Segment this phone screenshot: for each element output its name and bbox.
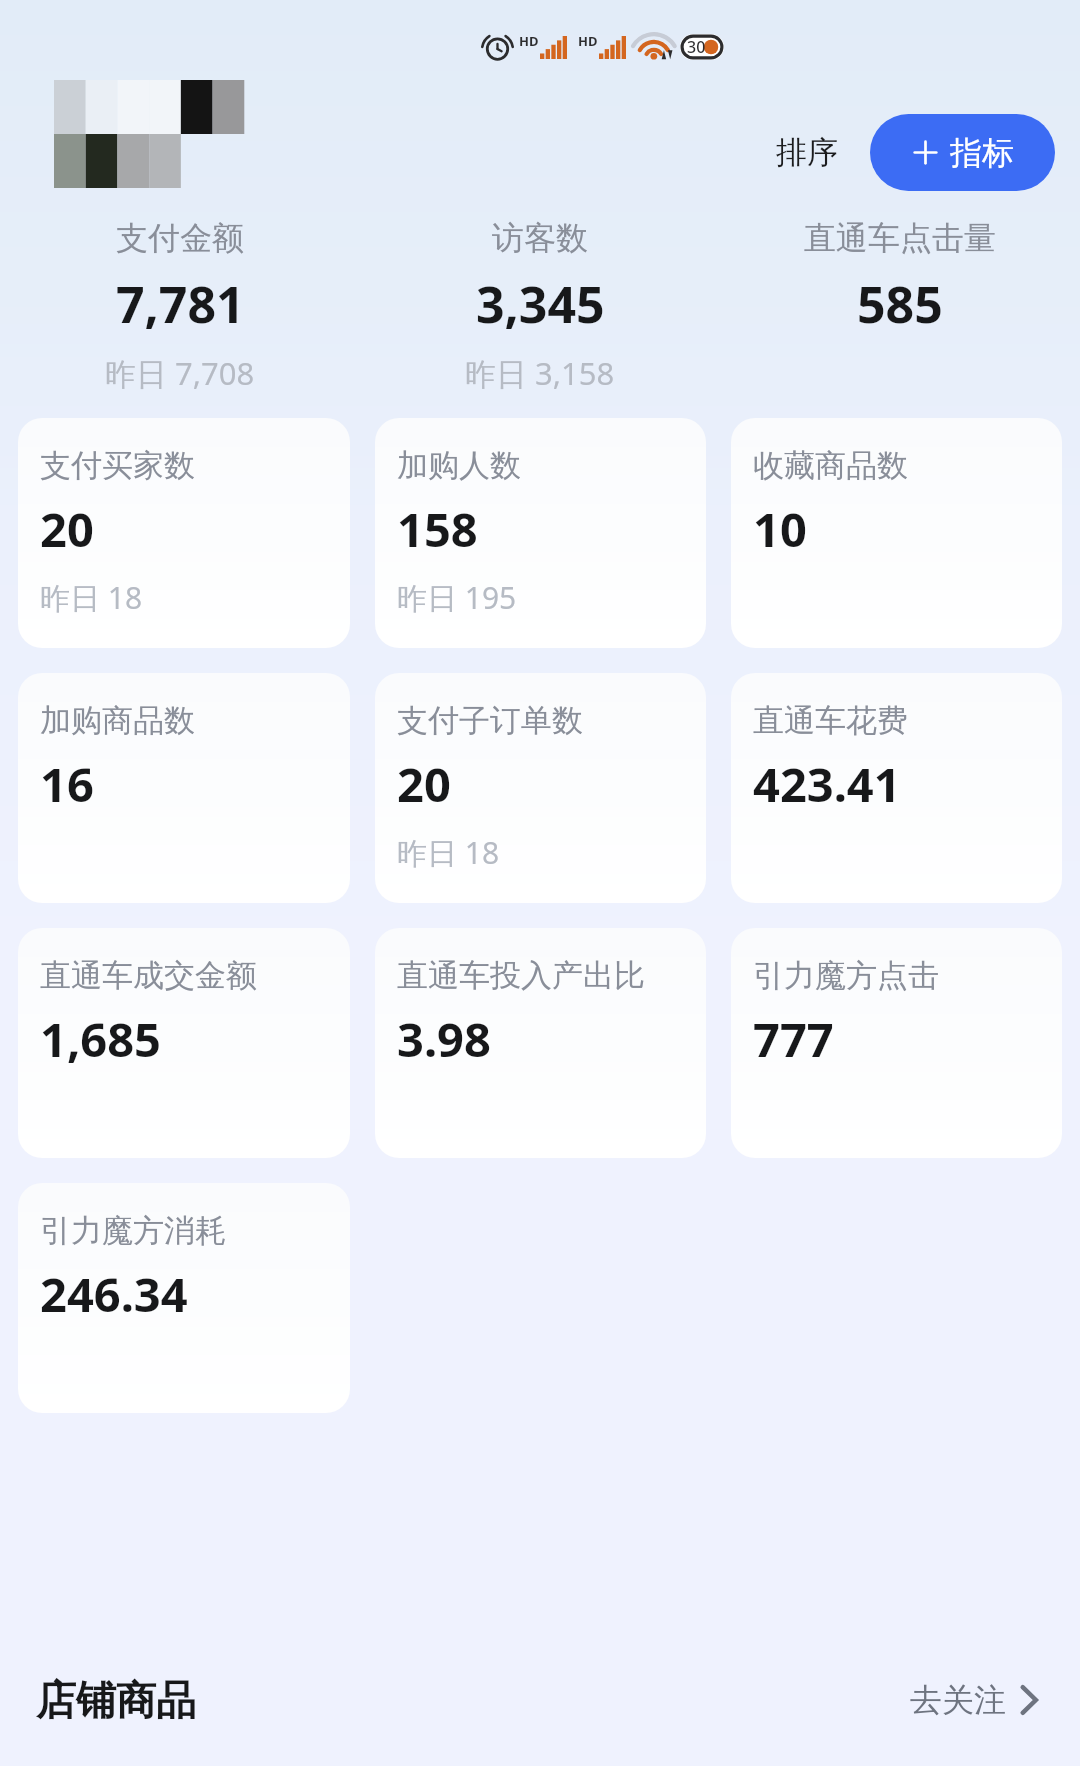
staticText: 去关注 <box>910 1680 1006 1720</box>
staticText: 3,345 <box>476 270 605 338</box>
button[interactable]: 支付子订单数 <box>375 673 706 903</box>
staticText: 店铺商品 <box>36 1675 196 1725</box>
staticText: 直通车点击量 <box>804 218 996 258</box>
staticText: 收藏商品数 <box>753 446 908 485</box>
staticText: 指标 <box>950 133 1014 173</box>
staticText: 昨日 3,158 <box>465 352 615 394</box>
button[interactable]: 收藏商品数 <box>731 418 1062 648</box>
staticText: 777 <box>753 1007 834 1071</box>
button[interactable]: 排序 <box>766 125 848 180</box>
staticText: 20 <box>40 497 94 561</box>
staticText: 1,685 <box>40 1007 161 1071</box>
staticText: 585 <box>857 270 943 338</box>
staticText: 支付金额 <box>116 218 244 258</box>
staticText: 访客数 <box>492 218 588 258</box>
button[interactable]: 直通车成交金额 <box>18 928 350 1158</box>
button[interactable]: 引力魔方消耗 <box>18 1183 350 1413</box>
button[interactable]: 去关注 <box>904 1672 1044 1728</box>
staticText: 16 <box>40 752 94 816</box>
staticText: 昨日 18 <box>40 577 143 618</box>
button[interactable]: 引力魔方点击 <box>731 928 1062 1158</box>
button[interactable]: 访客数 <box>360 214 720 398</box>
staticText: 246.34 <box>40 1262 188 1326</box>
button[interactable]: 加购商品数 <box>18 673 350 903</box>
staticText: 423.41 <box>753 752 901 816</box>
staticText: 排序 <box>776 133 838 172</box>
staticText: 加购人数 <box>397 446 521 485</box>
staticText: 引力魔方点击 <box>753 956 939 995</box>
button[interactable]: 直通车投入产出比 <box>375 928 706 1158</box>
staticText: 直通车成交金额 <box>40 956 257 995</box>
staticText: 30 <box>687 36 706 58</box>
staticText: 直通车投入产出比 <box>397 956 645 995</box>
staticText: 加购商品数 <box>40 701 195 740</box>
staticText: HD <box>578 32 598 50</box>
staticText: 昨日 195 <box>397 577 517 618</box>
staticText: 昨日 18 <box>397 832 500 873</box>
button[interactable]: 指标 <box>870 114 1055 191</box>
staticText: 3.98 <box>397 1007 491 1071</box>
staticText: 直通车花费 <box>753 701 908 740</box>
staticText: 7,781 <box>116 270 245 338</box>
button[interactable]: 直通车花费 <box>731 673 1062 903</box>
button[interactable]: 加购人数 <box>375 418 706 648</box>
staticText: HD <box>519 32 539 50</box>
button[interactable]: 支付买家数 <box>18 418 350 648</box>
staticText: 支付买家数 <box>40 446 195 485</box>
staticText: 158 <box>397 497 478 561</box>
staticText: 支付子订单数 <box>397 701 583 740</box>
staticText: 20 <box>397 752 451 816</box>
staticText: 10 <box>753 497 807 561</box>
other: 更多 <box>1020 1684 1038 1716</box>
button[interactable]: 支付金额 <box>0 214 360 398</box>
staticText: 引力魔方消耗 <box>40 1211 226 1250</box>
button[interactable]: 直通车点击量 <box>720 214 1080 398</box>
staticText: 昨日 7,708 <box>105 352 255 394</box>
